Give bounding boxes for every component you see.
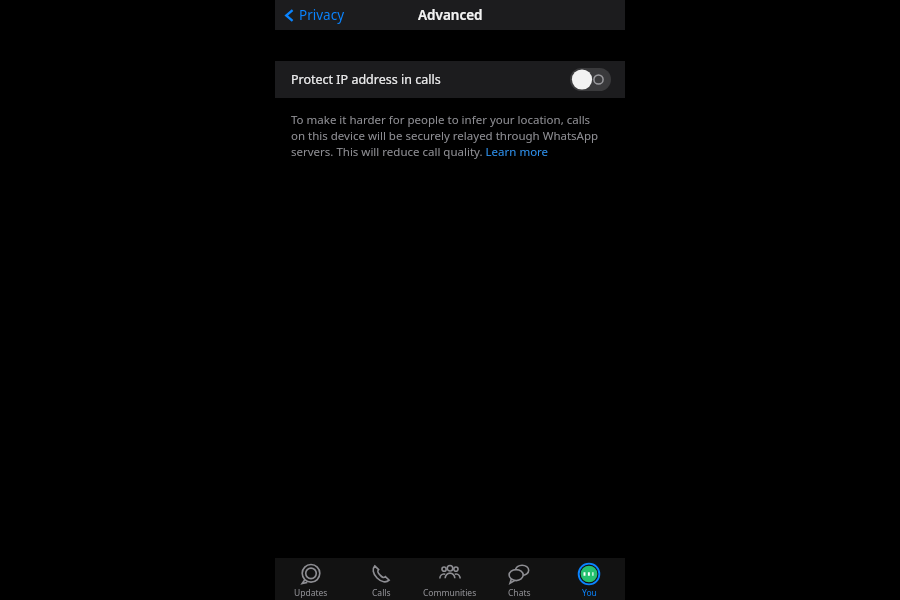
staticText: You — [582, 587, 597, 599]
button[interactable]: Updates — [278, 558, 344, 600]
staticText: Chats — [508, 587, 531, 599]
staticText: Calls — [372, 587, 391, 599]
button[interactable]: Chats — [486, 558, 552, 600]
button[interactable]: Protect IP address in calls toggle — [570, 68, 611, 91]
staticText: Communities — [423, 587, 477, 599]
staticText: To make it harder for people to infer yo… — [291, 112, 601, 160]
button[interactable]: Protect IP address in calls — [275, 61, 625, 98]
staticText: Protect IP address in calls — [291, 71, 570, 88]
staticText: Advanced — [418, 6, 483, 24]
button[interactable]: Communities — [417, 558, 483, 600]
button[interactable]: Privacy — [275, 3, 353, 27]
staticText: Privacy — [299, 6, 345, 24]
button[interactable]: You — [556, 558, 622, 600]
staticText: Updates — [294, 587, 328, 599]
button[interactable]: To make it harder for people to infer yo… — [275, 112, 625, 160]
button[interactable]: Calls — [348, 558, 414, 600]
